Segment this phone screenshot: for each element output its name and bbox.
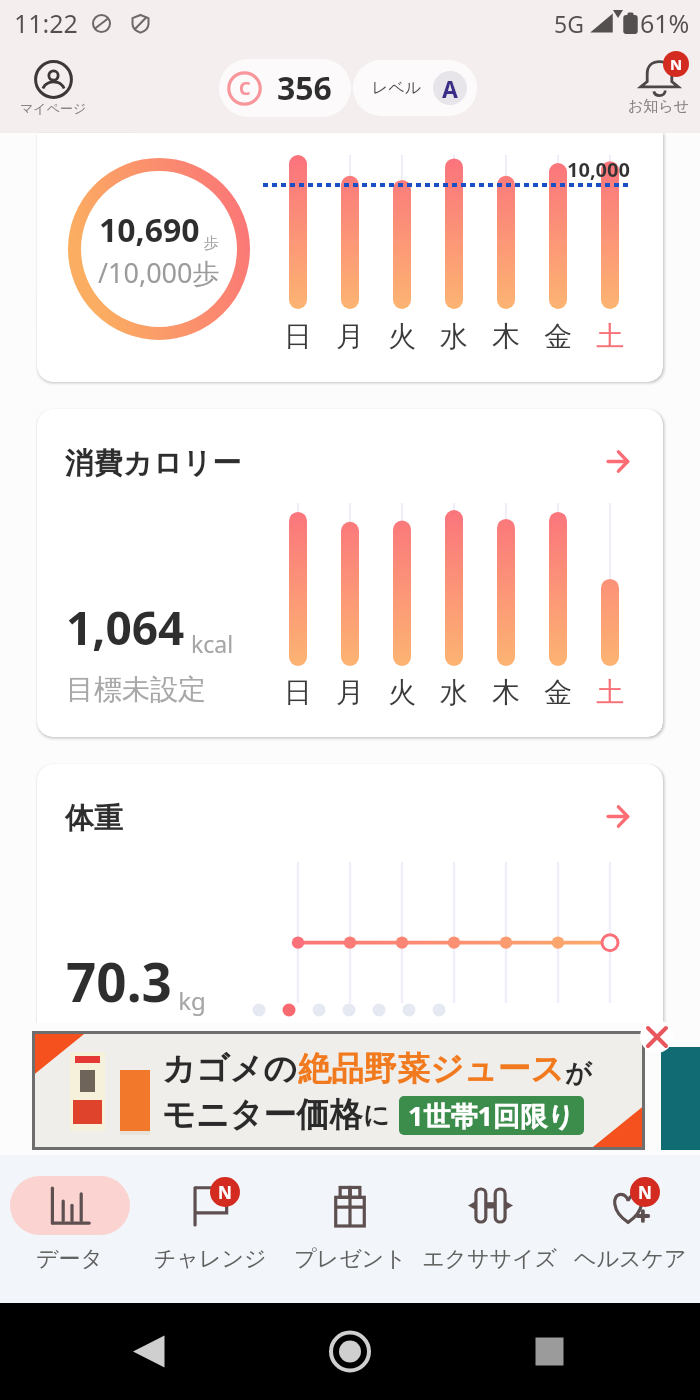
staticText: 61% bbox=[640, 6, 690, 40]
button[interactable]: 閉じる bbox=[640, 1020, 673, 1053]
button[interactable]: N bbox=[140, 1155, 280, 1303]
button[interactable]: 消費カロリー bbox=[37, 409, 663, 737]
staticText: お知らせ bbox=[628, 97, 690, 116]
staticText: 火 bbox=[376, 319, 428, 354]
staticText: レベル bbox=[372, 78, 422, 98]
staticText: 1,064 bbox=[66, 596, 185, 659]
staticText: 消費カロリー bbox=[65, 445, 242, 482]
button[interactable]: お知らせ bbox=[622, 61, 696, 116]
staticText: が bbox=[565, 1057, 592, 1090]
button[interactable]: 詳細 bbox=[607, 450, 629, 473]
staticText: 水 bbox=[428, 319, 480, 354]
staticText: 土 bbox=[584, 675, 636, 710]
staticText: ヘルスケア bbox=[574, 1245, 687, 1273]
staticText: データ bbox=[36, 1245, 104, 1273]
staticText: kg bbox=[172, 984, 206, 1017]
staticText: 月 bbox=[324, 319, 376, 354]
staticText: 金 bbox=[532, 319, 584, 354]
staticText: /10,000歩 bbox=[98, 254, 220, 291]
staticText: に bbox=[363, 1099, 390, 1132]
button[interactable]: レベル bbox=[353, 60, 477, 116]
button[interactable]: カゴメの bbox=[32, 1031, 645, 1150]
staticText: マイページ bbox=[20, 100, 87, 116]
staticText: N bbox=[218, 1181, 232, 1204]
staticText: 歩 bbox=[200, 232, 219, 252]
staticText: 1世帯1回限り bbox=[408, 1097, 575, 1134]
staticText: プレゼント bbox=[294, 1245, 407, 1273]
staticText: 絶品野菜ジュース bbox=[298, 1048, 565, 1090]
staticText: 10,000 bbox=[567, 156, 630, 183]
staticText: 水 bbox=[428, 675, 480, 710]
button[interactable]: C bbox=[219, 59, 351, 117]
staticText: 70.3 bbox=[66, 945, 172, 1017]
other: 詳細 bbox=[607, 450, 629, 473]
staticText: 10,690 bbox=[99, 208, 200, 252]
button[interactable]: N bbox=[560, 1155, 700, 1303]
other: 詳細 bbox=[607, 805, 629, 828]
staticText: 目標未設定 bbox=[66, 672, 206, 707]
button[interactable]: マイページ bbox=[12, 60, 95, 116]
staticText: チャレンジ bbox=[154, 1245, 267, 1273]
staticText: N bbox=[638, 1181, 652, 1204]
staticText: A bbox=[442, 73, 458, 104]
staticText: カゴメの bbox=[162, 1048, 298, 1090]
staticText: 日 bbox=[272, 319, 324, 354]
staticText: 月 bbox=[324, 675, 376, 710]
staticText: 日 bbox=[272, 675, 324, 710]
staticText: kcal bbox=[185, 628, 234, 659]
staticText: 土 bbox=[584, 319, 636, 354]
staticText: エクササイズ bbox=[422, 1245, 558, 1273]
staticText: 5G bbox=[554, 8, 584, 39]
staticText: 11:22 bbox=[14, 6, 78, 40]
button[interactable]: エクササイズ bbox=[420, 1155, 560, 1303]
staticText: C bbox=[239, 76, 251, 101]
button[interactable]: 詳細 bbox=[607, 805, 629, 828]
button[interactable]: 10,690 bbox=[37, 133, 663, 382]
staticText: 356 bbox=[277, 66, 332, 110]
staticText: 金 bbox=[532, 675, 584, 710]
button[interactable]: データ bbox=[0, 1155, 140, 1303]
staticText: 木 bbox=[480, 319, 532, 354]
staticText: 木 bbox=[480, 675, 532, 710]
staticText: モニター価格 bbox=[162, 1094, 363, 1136]
staticText: N bbox=[670, 54, 683, 74]
button[interactable]: 体重 bbox=[37, 764, 663, 1092]
staticText: 火 bbox=[376, 675, 428, 710]
button[interactable]: プレゼント bbox=[280, 1155, 420, 1303]
staticText: 体重 bbox=[65, 800, 123, 837]
